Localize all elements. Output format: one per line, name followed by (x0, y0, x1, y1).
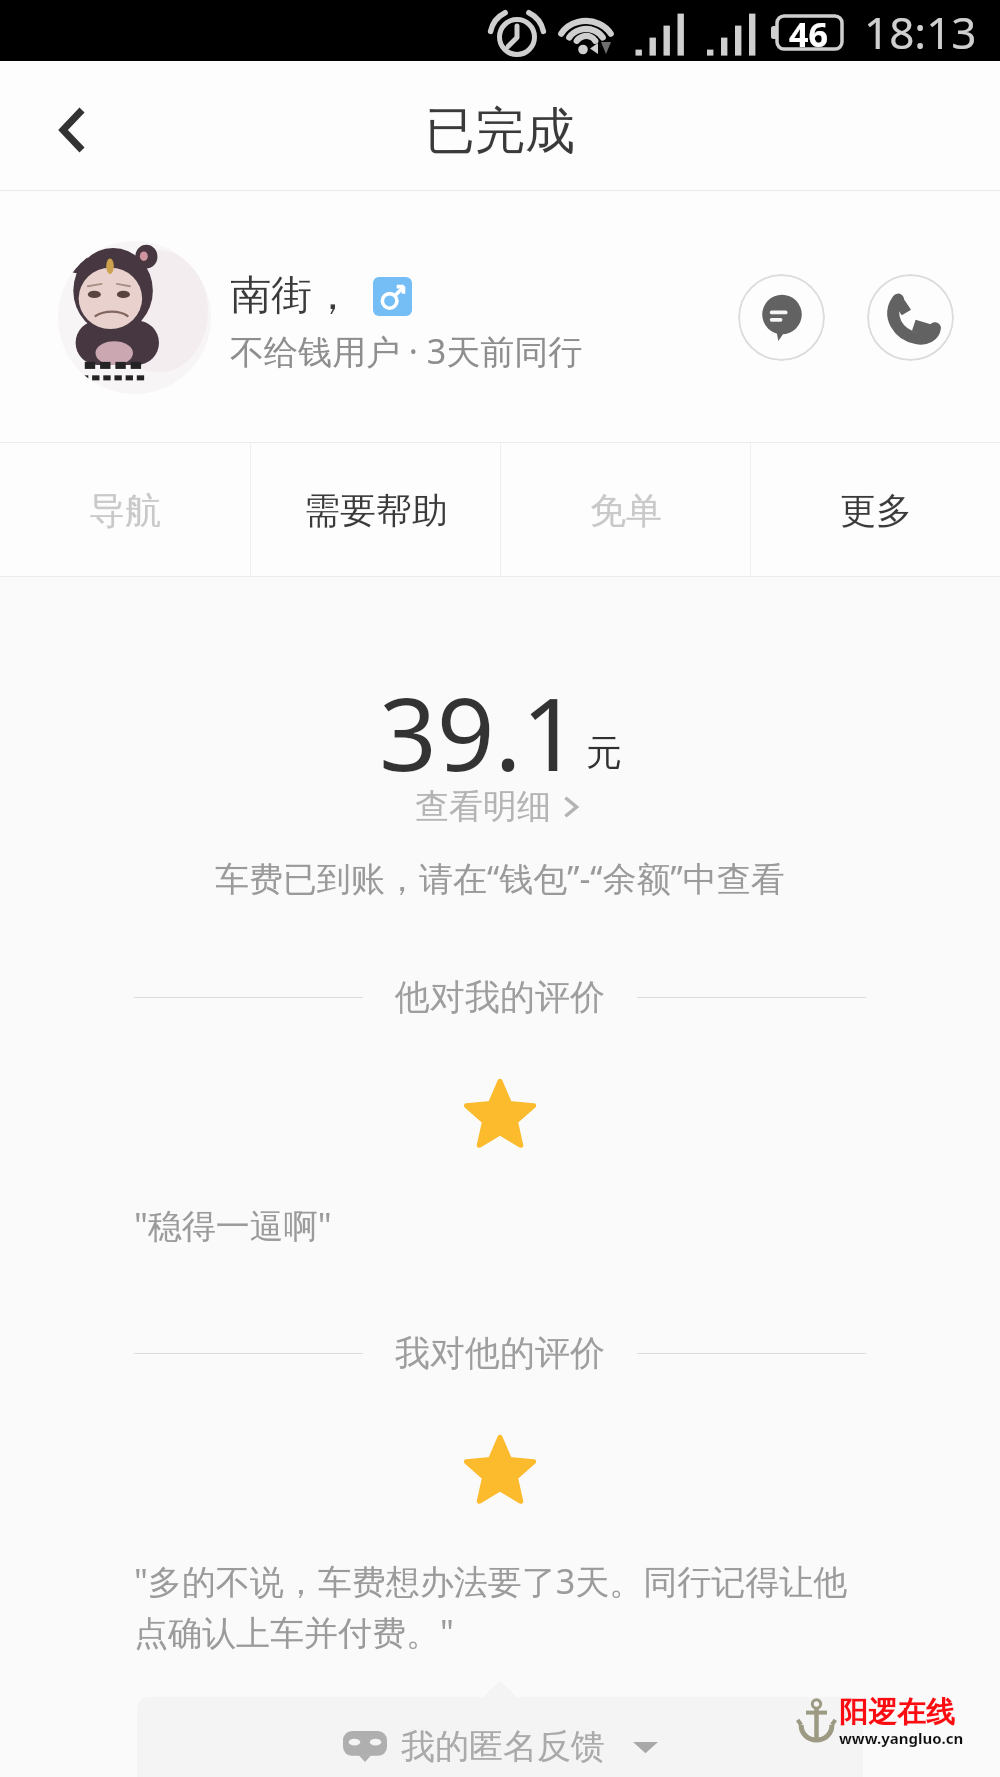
button[interactable]: 我的匿名反馈 (137, 1697, 863, 1777)
button[interactable]: 需要帮助 (251, 443, 500, 577)
button[interactable]: 免单 (501, 443, 750, 577)
staticText: 46 (789, 11, 828, 57)
staticText: 免单 (590, 488, 662, 533)
staticText: "稳得一逼啊" (134, 1202, 332, 1248)
staticText: www.yangluo.cn (839, 1728, 964, 1748)
staticText: 南街， (230, 270, 353, 322)
button[interactable]: 南街， (0, 191, 620, 443)
button[interactable]: 查看明细 (395, 779, 605, 834)
button[interactable]: Call (867, 274, 954, 361)
button[interactable]: 导航 (0, 443, 250, 577)
staticText: 不给钱用户 · 3天前同行 (230, 328, 583, 374)
staticText: 导航 (89, 488, 161, 533)
staticText: 需要帮助 (304, 488, 448, 533)
staticText: 我对他的评价 (395, 1331, 605, 1375)
staticText: 39.1 (379, 663, 580, 801)
staticText: 车费已到账，请在“钱包”-“余额”中查看 (215, 855, 785, 901)
staticText: 他对我的评价 (395, 975, 605, 1019)
staticText: 元 (586, 730, 622, 775)
button[interactable]: Message (738, 274, 825, 361)
staticText: 已完成 (425, 100, 575, 163)
staticText: 更多 (840, 488, 912, 533)
staticText: 阳逻在线 (839, 1694, 955, 1731)
staticText: 我的匿名反馈 (401, 1725, 605, 1768)
button[interactable]: 更多 (751, 443, 1000, 577)
staticText: "多的不说，车费想办法要了3天。同行记得让他点确认上车并付费。" (134, 1558, 864, 1655)
staticText: 18:13 (864, 2, 977, 62)
button[interactable]: Back (0, 61, 120, 191)
staticText: 查看明细 (415, 785, 551, 828)
